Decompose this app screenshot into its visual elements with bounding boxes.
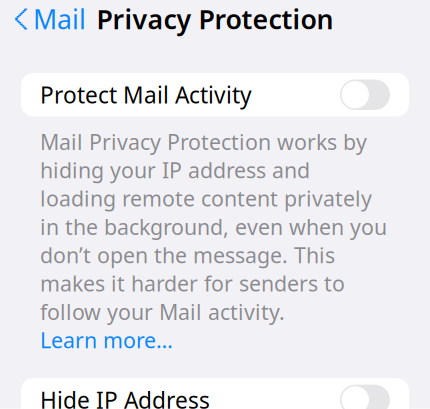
staticText: Mail <box>33 1 86 37</box>
staticText: Learn more… <box>40 326 173 354</box>
button[interactable]: Protect Mail Activity <box>21 73 409 116</box>
staticText: Mail Privacy Protection works by hiding … <box>40 127 387 326</box>
staticText: Protect Mail Activity <box>40 80 252 110</box>
button[interactable]: Hide IP Address <box>21 378 409 409</box>
button[interactable]: Learn more… <box>40 326 173 354</box>
button[interactable]: Mail <box>3 0 98 45</box>
staticText: Privacy Protection <box>96 1 333 37</box>
staticText: Hide IP Address <box>40 385 210 409</box>
